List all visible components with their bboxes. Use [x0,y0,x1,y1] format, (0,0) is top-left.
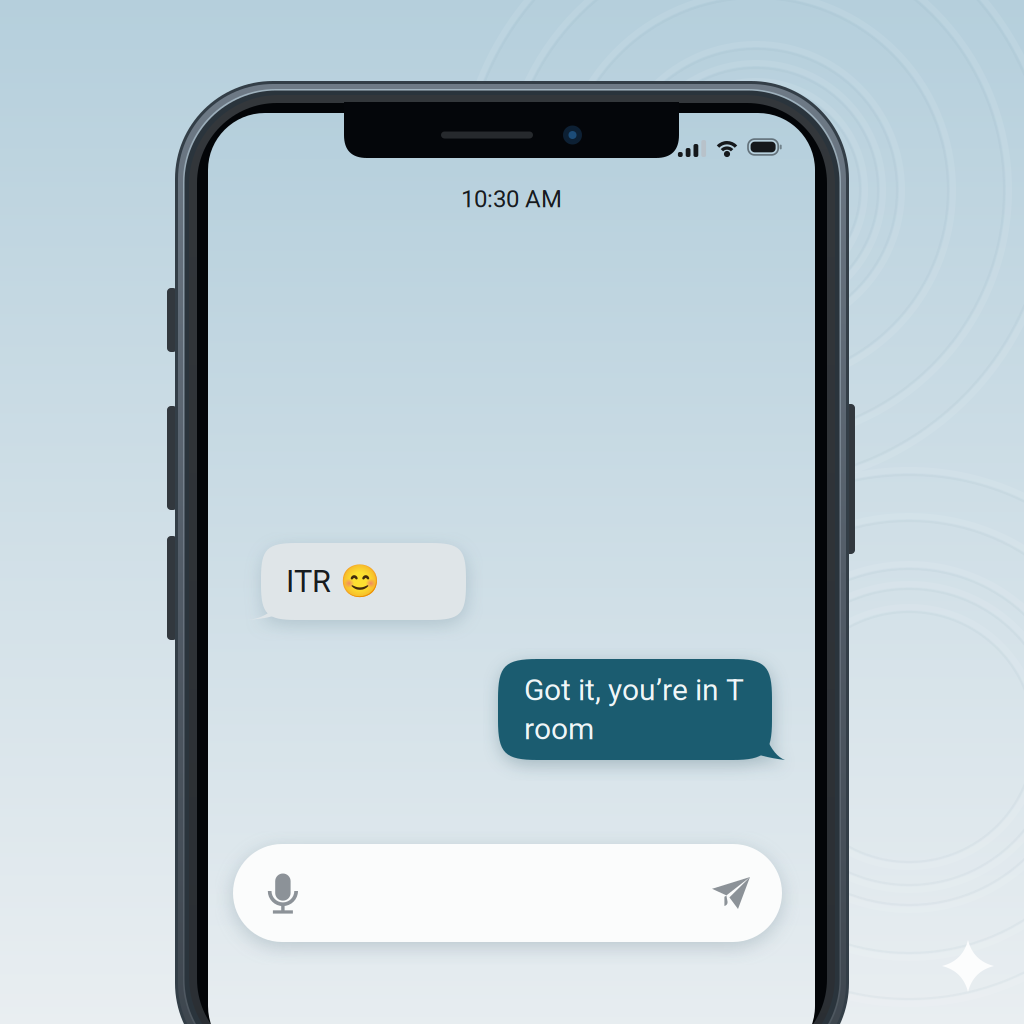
staticText: 10:30 AM [461,185,562,213]
staticText: ITR [286,563,331,599]
staticText: Got it, you’re in T [524,672,744,707]
staticText: room [524,711,594,747]
button[interactable]: Voice message [251,855,315,931]
button[interactable]: Send [699,855,763,931]
staticText: 😊 [340,563,380,600]
